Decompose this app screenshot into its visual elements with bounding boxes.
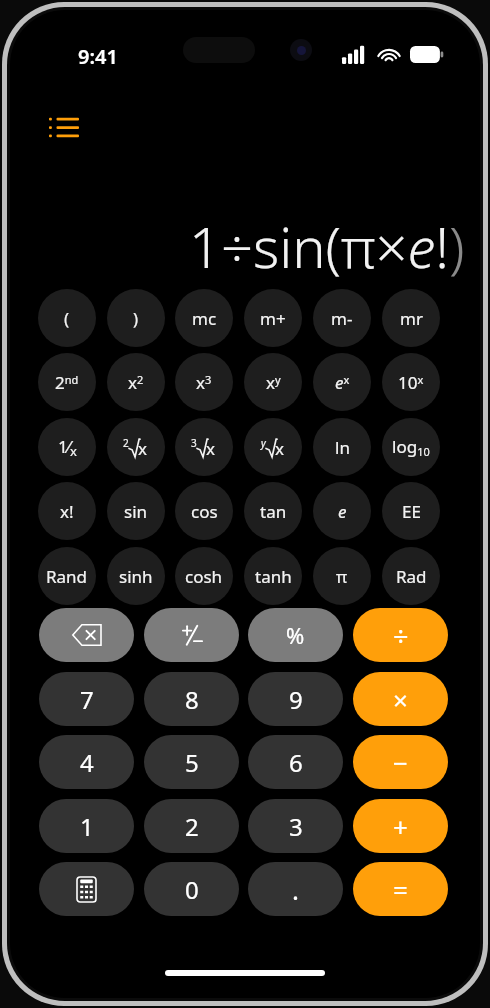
button[interactable]: 7 (39, 672, 134, 726)
button[interactable]: 2 (107, 418, 165, 476)
button[interactable]: 2 (144, 799, 239, 853)
staticText: sinh (119, 565, 153, 588)
staticText: 10x (398, 371, 424, 394)
staticText: Rand (46, 565, 88, 588)
button[interactable]: x3 (175, 353, 233, 411)
staticText: x2 (128, 371, 144, 394)
staticText: ) (133, 307, 139, 330)
staticText: mc (192, 307, 217, 330)
button[interactable]: x! (38, 482, 96, 540)
staticText: x3 (196, 371, 212, 394)
button[interactable]: EE (382, 482, 440, 540)
button[interactable]: e (313, 482, 371, 540)
button[interactable]: 2nd (38, 353, 96, 411)
staticText: 9:41 (78, 43, 118, 70)
button[interactable]: 10x (382, 353, 440, 411)
button[interactable]: Delete (39, 608, 134, 662)
button[interactable]: + (353, 799, 448, 853)
button[interactable]: ln (313, 418, 371, 476)
staticText: . (292, 872, 299, 907)
staticText: 0 (185, 873, 199, 906)
staticText: m- (331, 307, 353, 330)
button[interactable]: × (353, 672, 448, 726)
staticText: y (261, 436, 266, 450)
staticText: m+ (260, 307, 286, 330)
button[interactable]: 9 (248, 672, 343, 726)
staticText: = (393, 872, 408, 907)
button[interactable]: y (244, 418, 302, 476)
button[interactable]: m+ (244, 289, 302, 347)
staticText: π (336, 565, 348, 588)
staticText: 3 (289, 810, 303, 843)
button[interactable]: sinh (107, 547, 165, 605)
staticText: 1÷sin(π×e!) (189, 208, 465, 284)
staticText: 1 (80, 810, 94, 843)
button[interactable]: ex (313, 353, 371, 411)
staticText: 7 (80, 683, 94, 716)
staticText: ln (335, 436, 350, 459)
button[interactable]: Rand (38, 547, 96, 605)
button[interactable]: . (248, 862, 343, 916)
staticText: EE (402, 500, 421, 523)
button[interactable]: π (313, 547, 371, 605)
staticText: cos (191, 500, 218, 523)
button[interactable]: 3 (248, 799, 343, 853)
staticText: 6 (289, 746, 303, 779)
button[interactable]: ) (107, 289, 165, 347)
staticText: log10 (392, 435, 430, 459)
button[interactable]: − (353, 735, 448, 789)
staticText: cosh (185, 565, 223, 588)
staticText: x (206, 437, 215, 460)
staticText: sin (124, 500, 148, 523)
staticText: ex (335, 371, 350, 394)
staticText: xy (266, 371, 281, 394)
button[interactable]: 4 (39, 735, 134, 789)
staticText: e (338, 500, 347, 523)
staticText: tanh (255, 565, 292, 588)
button[interactable]: cosh (175, 547, 233, 605)
button[interactable]: ( (38, 289, 96, 347)
staticText: × (393, 682, 408, 717)
staticText: ÷ (393, 617, 409, 654)
button[interactable]: History (38, 102, 90, 154)
button[interactable]: 3 (175, 418, 233, 476)
staticText: x! (60, 500, 74, 523)
staticText: 3 (191, 436, 197, 450)
button[interactable]: ÷ (353, 608, 448, 662)
button[interactable]: mr (382, 289, 440, 347)
staticText: 1⁄x (58, 435, 77, 460)
button[interactable]: cos (175, 482, 233, 540)
staticText: % (286, 620, 305, 650)
button[interactable]: 8 (144, 672, 239, 726)
button[interactable]: mc (175, 289, 233, 347)
button[interactable]: tanh (244, 547, 302, 605)
button[interactable]: x2 (107, 353, 165, 411)
staticText: + (393, 809, 408, 844)
button[interactable] (144, 608, 239, 662)
button[interactable]: 1⁄x (38, 418, 96, 476)
button[interactable]: % (248, 608, 343, 662)
staticText: 2nd (55, 371, 79, 394)
button[interactable]: 5 (144, 735, 239, 789)
staticText: x (275, 437, 284, 460)
staticText: 8 (185, 683, 199, 716)
button[interactable]: Rad (382, 547, 440, 605)
button[interactable]: 1 (39, 799, 134, 853)
button[interactable]: 6 (248, 735, 343, 789)
staticText: − (393, 745, 408, 780)
button[interactable]: 0 (144, 862, 239, 916)
button[interactable]: Basic calculator (39, 862, 134, 916)
button[interactable]: = (353, 862, 448, 916)
staticText: 2 (185, 810, 199, 843)
button[interactable]: sin (107, 482, 165, 540)
staticText: 9 (289, 683, 303, 716)
button[interactable]: xy (244, 353, 302, 411)
button[interactable]: log10 (382, 418, 440, 476)
staticText: mr (400, 307, 423, 330)
staticText: ( (64, 307, 70, 330)
button[interactable]: m- (313, 289, 371, 347)
staticText: 4 (80, 746, 94, 779)
button[interactable]: tan (244, 482, 302, 540)
staticText: 2 (123, 436, 129, 450)
staticText: x (138, 437, 147, 460)
